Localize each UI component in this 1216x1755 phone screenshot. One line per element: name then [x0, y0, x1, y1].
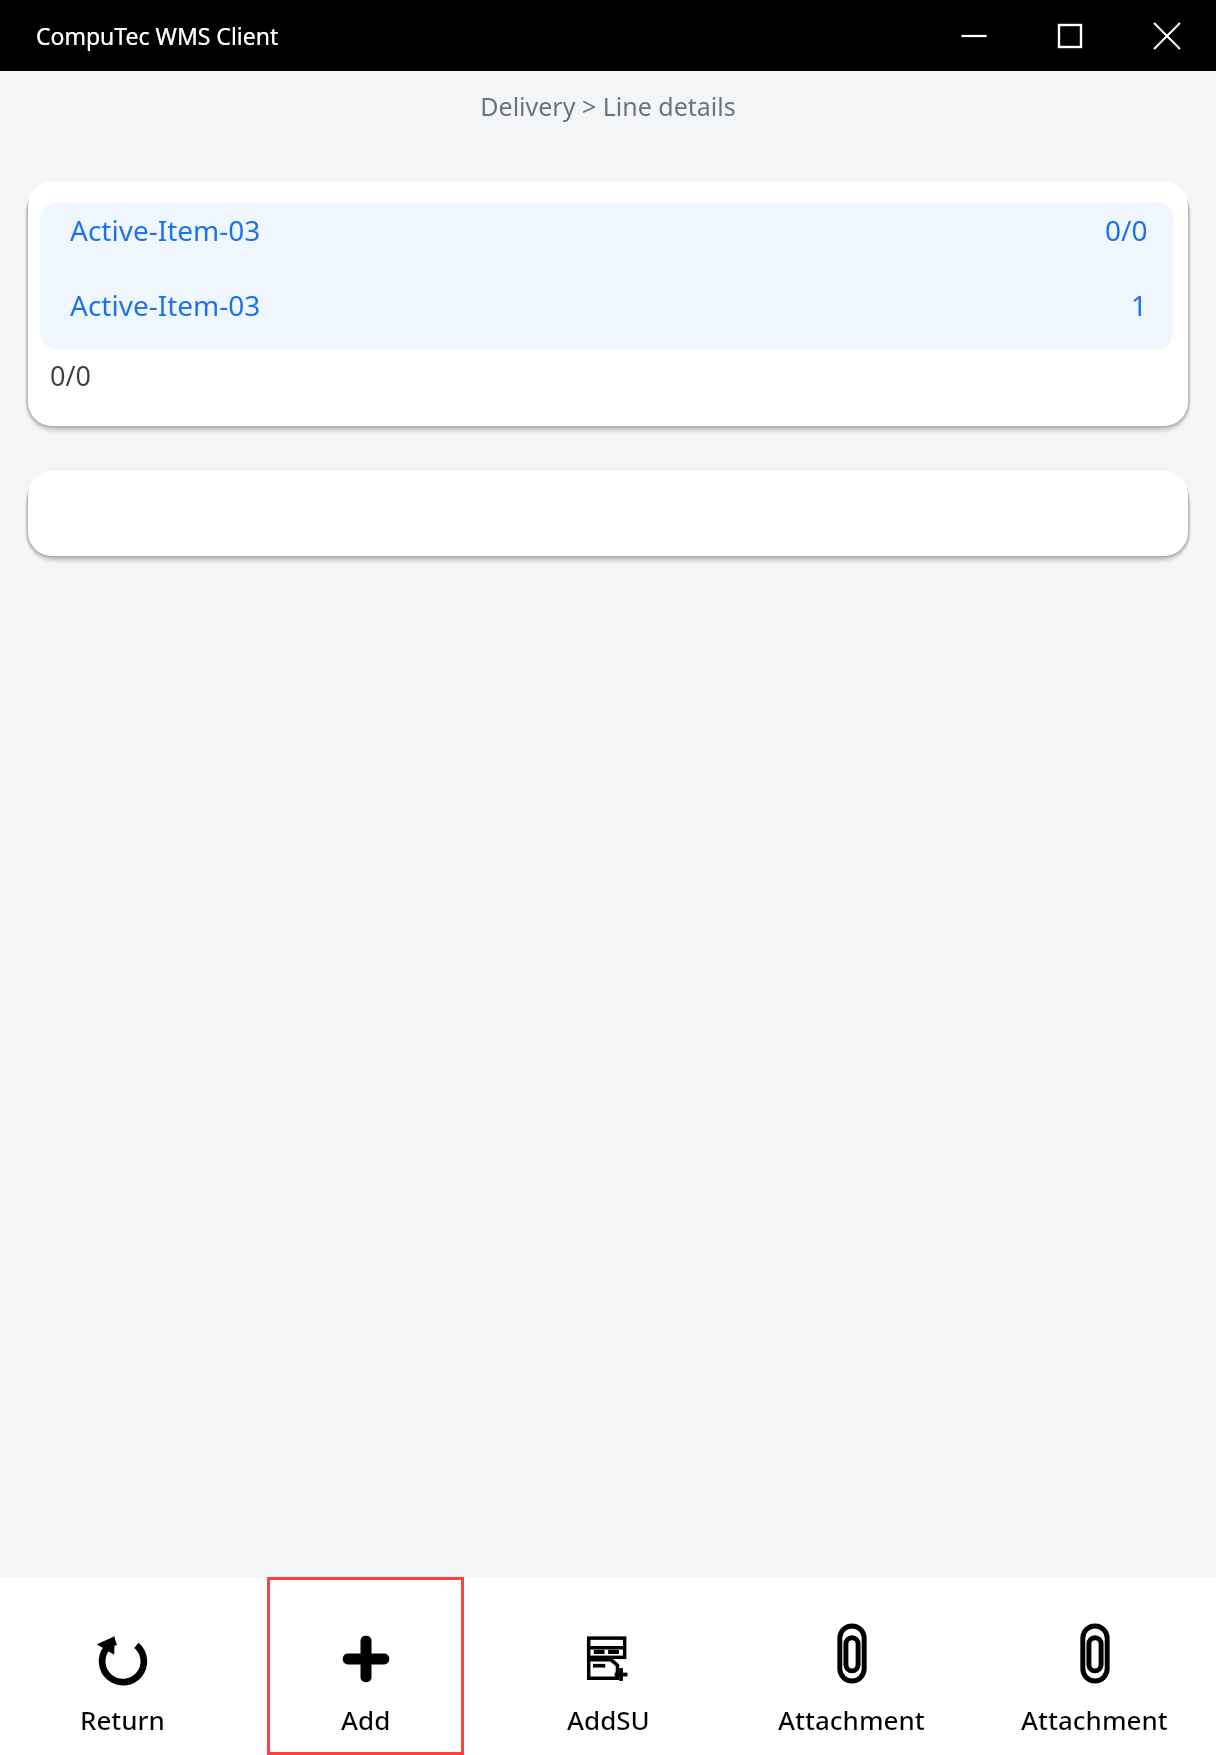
staticText: 1	[1131, 286, 1148, 324]
button[interactable]: AddSU	[510, 1577, 707, 1755]
staticText: Attachment	[778, 1702, 925, 1737]
button[interactable]: Minimize	[926, 0, 1022, 71]
button[interactable]: Return	[24, 1577, 221, 1755]
staticText: Active-Item-03	[70, 286, 261, 324]
staticText: Delivery > Line details	[480, 89, 736, 123]
button[interactable]: Attachment	[996, 1577, 1193, 1755]
staticText: 0/0	[1105, 211, 1148, 249]
button[interactable]: Maximize	[1022, 0, 1118, 71]
staticText: Attachment	[1021, 1702, 1168, 1737]
staticText: AddSU	[567, 1702, 650, 1737]
button[interactable]: Add	[267, 1577, 464, 1755]
staticText: CompuTec WMS Client	[36, 20, 279, 51]
staticText: 0/0	[50, 357, 91, 394]
button[interactable]: Attachment	[753, 1577, 950, 1755]
staticText: Active-Item-03	[70, 211, 261, 249]
staticText: Add	[341, 1702, 391, 1737]
button[interactable]: Close	[1118, 0, 1216, 71]
staticText: Return	[80, 1702, 165, 1737]
button[interactable]: Active-Item-03	[40, 203, 1173, 349]
